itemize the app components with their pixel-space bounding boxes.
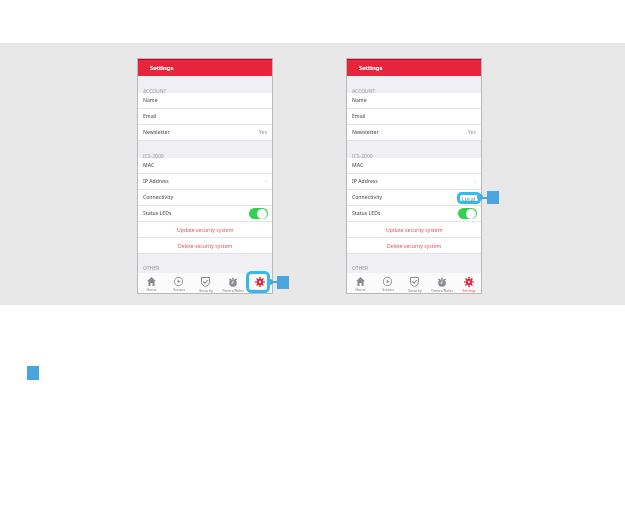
button[interactable]: MAC (346, 158, 482, 173)
button[interactable]: Status LEDs (346, 206, 482, 221)
staticText: Email (143, 113, 157, 120)
staticText: Settings (253, 288, 267, 293)
staticText: Newsletter (143, 129, 170, 136)
staticText: Status LEDs (352, 210, 381, 217)
button[interactable] (458, 208, 477, 219)
staticText: Security (408, 288, 422, 293)
button[interactable]: Name (137, 93, 273, 108)
staticText: MAC (352, 162, 364, 169)
staticText: Update security system (177, 226, 234, 233)
button[interactable]: Timers/Rules (219, 273, 246, 294)
button[interactable]: Delete security system (346, 238, 482, 253)
staticText: ACCOUNT (143, 88, 167, 95)
other: Settings (255, 277, 265, 287)
button[interactable]: Connectivity (346, 190, 482, 205)
button[interactable]: Local (458, 194, 476, 202)
staticText: Timers/Rules (431, 288, 453, 293)
staticText: - (265, 178, 267, 185)
other: Settings (464, 277, 474, 287)
button[interactable]: Settings (455, 273, 482, 294)
button[interactable]: IP Address (137, 174, 273, 189)
staticText: Local (462, 195, 476, 202)
staticText: Settings (150, 64, 174, 72)
button[interactable]: Home (137, 273, 165, 294)
button[interactable]: Delete security system (137, 238, 273, 253)
staticText: IP Address (143, 178, 169, 185)
staticText: Status LEDs (143, 210, 172, 217)
button[interactable]: Status LEDs (137, 206, 273, 221)
staticText: Settings (359, 64, 383, 72)
staticText: OTHER (143, 265, 160, 272)
staticText: Newsletter (352, 129, 379, 136)
staticText: Connectivity (352, 194, 383, 201)
button[interactable]: Newsletter (346, 125, 482, 140)
button[interactable]: Security (192, 273, 219, 294)
staticText: Name (143, 97, 158, 104)
staticText: Security (199, 288, 213, 293)
staticText: OTHER (352, 265, 369, 272)
button[interactable]: Connectivity (137, 190, 273, 205)
button[interactable]: IP Address (346, 174, 482, 189)
staticText: Scenes (173, 287, 185, 292)
button[interactable]: Newsletter (137, 125, 273, 140)
staticText: Settings (462, 288, 476, 293)
staticText: Scenes (382, 287, 394, 292)
button[interactable]: Name (346, 93, 482, 108)
button[interactable]: MAC (137, 158, 273, 173)
button[interactable]: Email (137, 109, 273, 124)
button[interactable] (249, 208, 268, 219)
staticText: Delete security system (387, 242, 442, 249)
button[interactable]: Timers/Rules (428, 273, 455, 294)
staticText: - (474, 178, 476, 185)
staticText: MAC (143, 162, 155, 169)
staticText: Connectivity (143, 194, 174, 201)
staticText: Delete security system (178, 242, 233, 249)
staticText: Email (352, 113, 366, 120)
staticText: Home (355, 287, 366, 292)
staticText: Update security system (386, 226, 443, 233)
button[interactable]: Home (346, 273, 374, 294)
button[interactable]: Security (401, 273, 428, 294)
staticText: Yes (468, 129, 476, 136)
button[interactable]: Scenes (165, 273, 192, 294)
button[interactable]: Update security system (137, 222, 273, 237)
button[interactable]: Update security system (346, 222, 482, 237)
staticText: IP Address (352, 178, 378, 185)
staticText: Timers/Rules (222, 288, 244, 293)
button[interactable]: Email (346, 109, 482, 124)
staticText: ICS-2000 (352, 153, 373, 160)
staticText: Yes (259, 129, 267, 136)
button[interactable]: Scenes (374, 273, 401, 294)
staticText: ACCOUNT (352, 88, 376, 95)
button[interactable]: Settings (246, 273, 273, 294)
staticText: Home (146, 287, 157, 292)
staticText: Name (352, 97, 367, 104)
staticText: ICS-2000 (143, 153, 164, 160)
